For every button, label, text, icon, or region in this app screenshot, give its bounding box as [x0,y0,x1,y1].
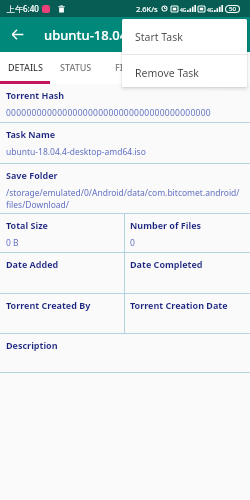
button[interactable]: Save Folder [0,164,250,213]
button[interactable]: Remove Task [122,55,247,87]
staticText: Torrent Created By [6,299,91,311]
button[interactable]: FILES [101,52,151,81]
button[interactable]: Total Size [0,214,124,252]
staticText: 2.6K/s [136,4,158,14]
button[interactable]: Date Completed [125,253,203,293]
staticText: 4G [180,7,187,14]
button[interactable]: Back [0,17,35,52]
staticText: STATUS [60,61,92,73]
staticText: /storage/emulated/0/Android/data/com.bit… [6,187,250,211]
staticText: Description [6,339,58,351]
staticText: Total Size [6,219,48,231]
button[interactable]: Start Task [122,19,247,54]
button[interactable]: Task Name [0,123,250,163]
staticText: DETAILS [8,61,43,73]
staticText: 50 [229,5,236,13]
staticText: ubuntu-18.04.4-desktop-amd64.iso [44,26,250,44]
staticText: 0 [130,237,135,249]
staticText: FILES [115,61,138,73]
staticText: Date Added [6,258,59,270]
staticText: 上午6:40 [7,3,39,14]
button[interactable]: Torrent Hash [0,84,250,122]
button[interactable]: Torrent Creation Date [125,294,228,333]
staticText: Task Name [6,128,56,140]
staticText: Torrent Creation Date [130,299,228,311]
button[interactable]: STATUS [50,52,101,81]
staticText: Save Folder [6,169,58,181]
staticText: Start Task [135,30,183,44]
staticText: Number of Files [130,219,202,231]
button[interactable]: Torrent Created By [0,294,124,333]
staticText: Remove Task [135,66,199,80]
staticText: ubuntu-18.04.4-desktop-amd64.iso [6,146,146,158]
staticText: 0 B [6,237,19,249]
staticText: 0000000000000000000000000000000000000000 [6,107,211,119]
staticText: Torrent Hash [6,89,65,101]
staticText: 4G [207,7,214,14]
button[interactable]: Date Added [0,253,124,293]
staticText: Date Completed [130,258,203,270]
button[interactable]: DETAILS [0,52,50,81]
button[interactable]: Number of Files [125,214,202,252]
button[interactable]: Description [0,334,250,372]
